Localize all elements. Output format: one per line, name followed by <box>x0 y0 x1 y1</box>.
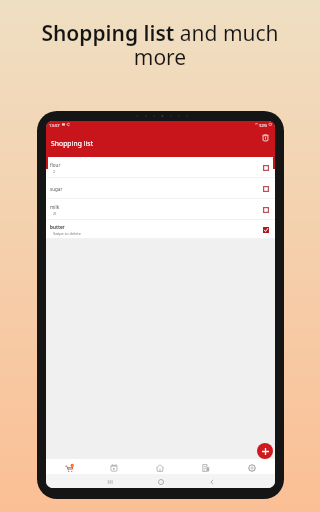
button[interactable]: Delete checked items <box>259 130 272 143</box>
staticText: Shopping list <box>51 139 94 148</box>
button[interactable]: Home <box>154 474 168 488</box>
staticText: butter <box>50 224 65 230</box>
button[interactable]: Calendar <box>91 459 137 474</box>
button[interactable]: Recents <box>103 474 117 488</box>
staticText: 13:57 <box>49 123 60 129</box>
button[interactable]: butter <box>46 220 275 239</box>
button[interactable]: milk <box>46 199 275 220</box>
staticText: Swipe to delete <box>53 231 81 236</box>
staticText: flour <box>50 162 61 168</box>
button[interactable]: Settings <box>229 459 275 474</box>
staticText: milk <box>50 204 60 210</box>
button[interactable]: Home <box>137 459 183 474</box>
button[interactable]: sugar <box>46 178 275 199</box>
staticText: 32% <box>259 123 268 129</box>
button[interactable]: Back <box>205 474 219 488</box>
staticText: Shopping list and much more <box>38 19 282 72</box>
button[interactable]: Shopping cart <box>46 459 91 474</box>
button[interactable]: flour <box>48 157 273 178</box>
staticText: sugar <box>50 186 63 192</box>
button[interactable]: Recipes <box>183 459 229 474</box>
staticText: 2l <box>53 211 57 216</box>
staticText: 2 <box>53 169 56 174</box>
button[interactable]: Add item <box>257 443 273 459</box>
